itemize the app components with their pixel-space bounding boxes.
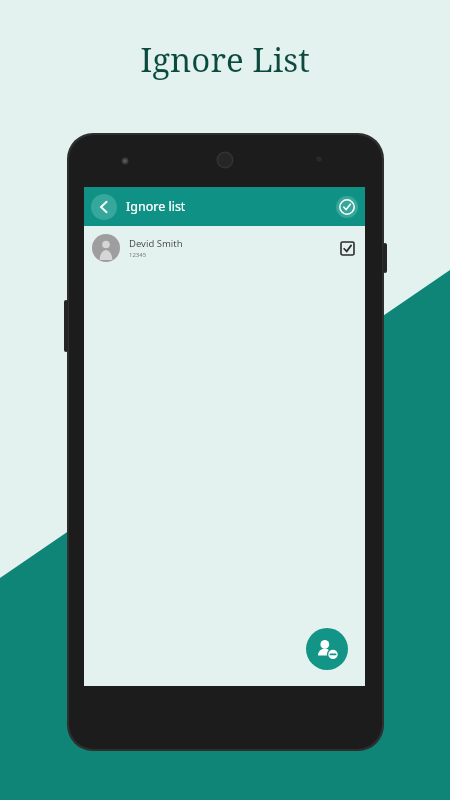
staticText: Ignore list xyxy=(126,198,186,215)
button[interactable]: Select all xyxy=(336,196,358,218)
staticText: 12345 xyxy=(129,251,147,259)
staticText: Devid Smith xyxy=(129,237,183,250)
button[interactable]: Toggle selection xyxy=(339,240,355,256)
staticText: Ignore List xyxy=(140,37,310,82)
button[interactable]: Devid Smith xyxy=(84,226,365,270)
button[interactable]: Back xyxy=(91,194,117,220)
button[interactable]: Remove person xyxy=(306,628,348,670)
